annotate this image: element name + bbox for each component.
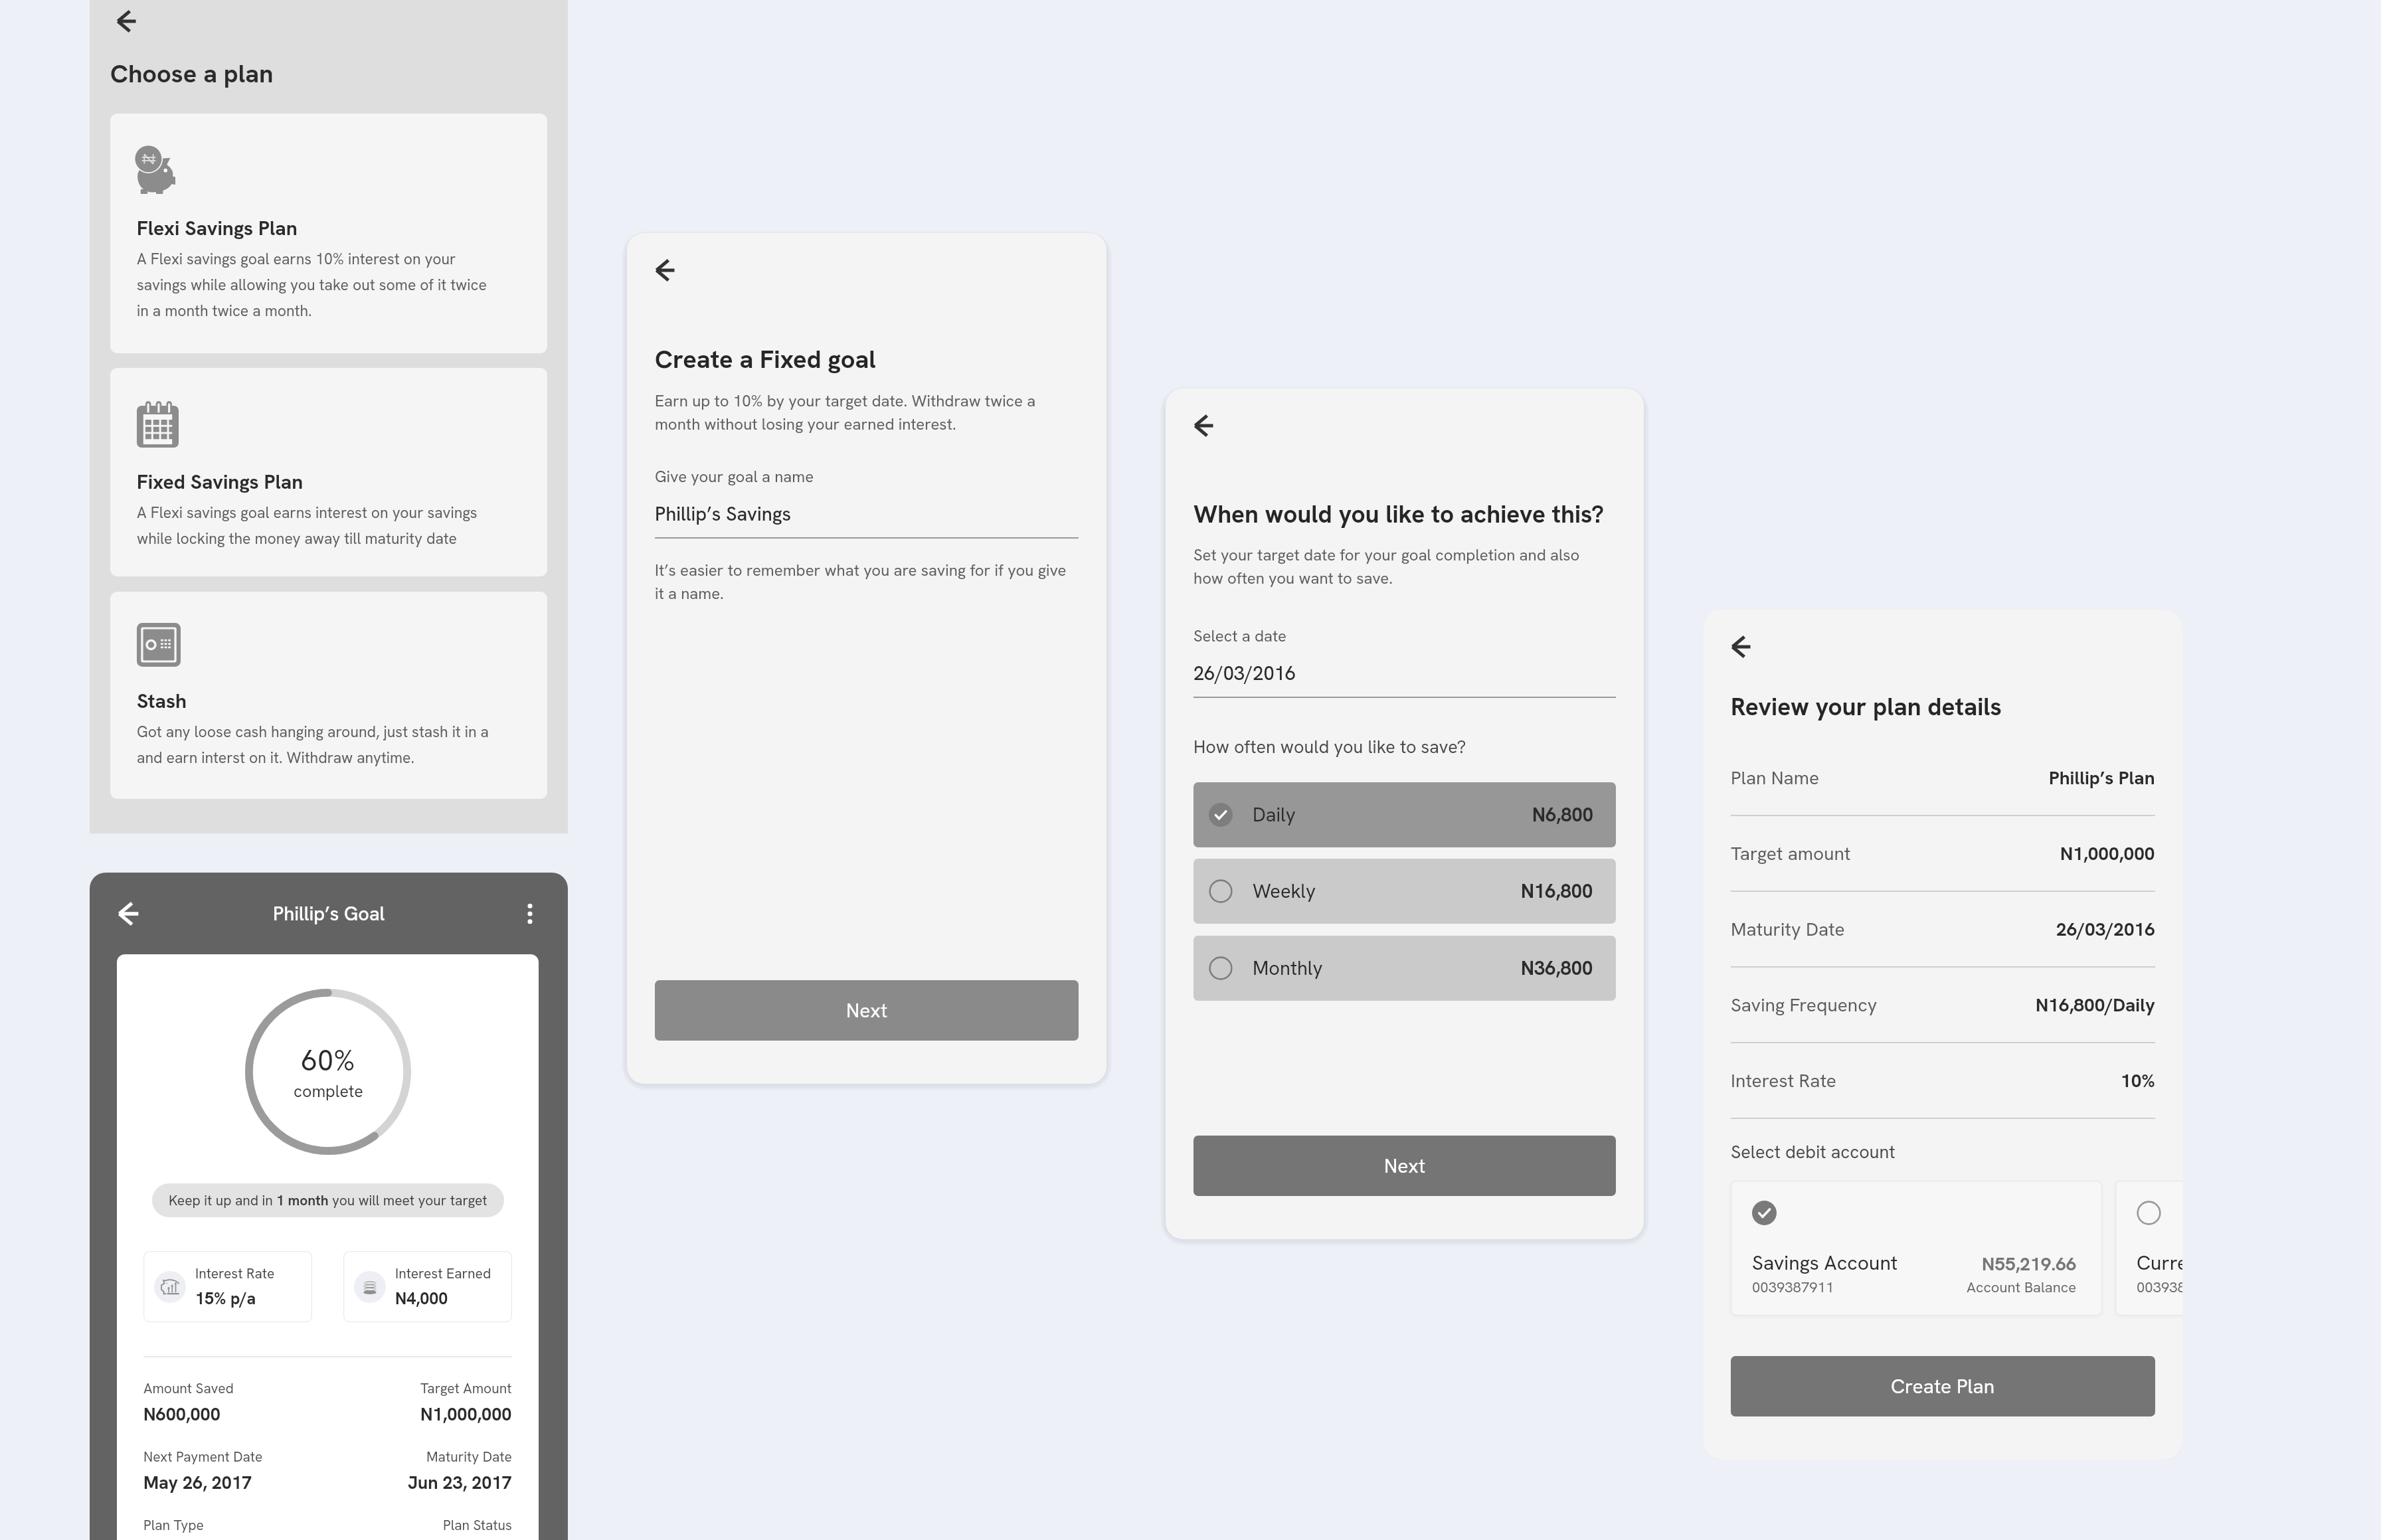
button[interactable]: Navigate back — [116, 11, 137, 32]
staticText: Amount Saved — [143, 1379, 234, 1397]
button[interactable]: Monthly — [1193, 936, 1616, 1001]
staticText: When would you like to achieve this? — [1193, 498, 1605, 530]
staticText: N16,800 — [1521, 879, 1593, 904]
button[interactable]: Flexi Savings Plan — [110, 114, 547, 353]
staticText: Phillip’s Savings — [655, 501, 792, 527]
staticText: N36,800 — [1521, 956, 1593, 981]
staticText: Earn up to 10% by your target date. With… — [655, 390, 1053, 434]
button[interactable]: Fixed Savings Plan — [110, 368, 547, 576]
staticText: Next — [1384, 1153, 1426, 1179]
staticText: Maturity Date — [426, 1448, 512, 1466]
staticText: Create Plan — [1891, 1373, 1995, 1399]
button[interactable]: More options — [516, 900, 544, 928]
button[interactable]: Savings Account — [1731, 1181, 2102, 1316]
staticText: 10% — [2121, 1069, 2155, 1092]
staticText: How often would you like to save? — [1193, 735, 1466, 758]
staticText: A Flexi savings goal earns interest on y… — [137, 503, 499, 549]
button[interactable]: Next — [655, 980, 1079, 1041]
button[interactable]: Navigate back — [655, 260, 676, 281]
staticText: Plan Type — [143, 1516, 204, 1534]
staticText: Savings Account — [1752, 1250, 1905, 1276]
staticText: N55,219.66 — [1982, 1252, 2077, 1276]
staticText: Account Balance — [1967, 1278, 2077, 1297]
button[interactable]: Create Plan — [1731, 1356, 2155, 1416]
staticText: Plan Status — [443, 1516, 512, 1534]
staticText: Phillip’s Goal — [273, 901, 385, 926]
staticText: 60% — [302, 1042, 355, 1079]
staticText: Saving Frequency — [1731, 993, 1878, 1017]
staticText: Flexi Savings Plan — [137, 215, 298, 241]
staticText: N1,000,000 — [420, 1403, 512, 1426]
staticText: Interest Rate — [195, 1264, 275, 1282]
staticText: Next Payment Date — [143, 1448, 263, 1466]
staticText: Target Amount — [420, 1379, 512, 1397]
staticText: N16,800/Daily — [2036, 993, 2155, 1017]
staticText: It’s easier to remember what you are sav… — [655, 560, 1079, 604]
staticText: Choose a plan — [110, 57, 274, 90]
staticText: Weekly — [1253, 879, 1316, 904]
button[interactable]: Navigate back — [1193, 415, 1215, 436]
staticText: May 26, 2017 — [143, 1471, 252, 1494]
staticText: N600,000 — [143, 1403, 220, 1426]
staticText: A Flexi savings goal earns 10% interest … — [137, 249, 499, 321]
staticText: N4,000 — [395, 1288, 448, 1310]
staticText: 0039387911 — [2137, 1278, 2182, 1297]
staticText: N6,800 — [1532, 802, 1593, 827]
staticText: Plan Name — [1731, 766, 1820, 790]
staticText: Maturity Date — [1731, 917, 1845, 941]
staticText: Target amount — [1731, 841, 1851, 865]
staticText: Set your target date for your goal compl… — [1193, 545, 1595, 588]
staticText: Review your plan details — [1731, 691, 2002, 723]
staticText: Fixed Savings Plan — [137, 469, 304, 495]
staticText: complete — [294, 1080, 363, 1102]
staticText: Got any loose cash hanging around, just … — [137, 722, 499, 768]
staticText: Select a date — [1193, 626, 1287, 646]
button[interactable]: Current Account — [2115, 1181, 2182, 1316]
staticText: N1,000,000 — [2060, 841, 2155, 865]
button[interactable]: Interest Earned — [343, 1251, 512, 1322]
button[interactable]: Next — [1193, 1136, 1616, 1196]
staticText: Give your goal a name — [655, 466, 814, 487]
button[interactable]: Stash — [110, 592, 547, 799]
staticText: Keep it up and in 1 month you will meet … — [169, 1191, 487, 1209]
staticText: Interest Rate — [1731, 1069, 1836, 1092]
staticText: Daily — [1253, 802, 1296, 827]
staticText: Next — [846, 997, 888, 1023]
staticText: Phillip’s Plan — [2049, 766, 2155, 790]
button[interactable]: Navigate back — [1731, 636, 1752, 657]
staticText: 26/03/2016 — [2056, 917, 2155, 941]
staticText: Jun 23, 2017 — [408, 1471, 512, 1494]
staticText: 0039387911 — [1752, 1278, 1834, 1297]
staticText: Select debit account — [1731, 1140, 1896, 1163]
staticText: Monthly — [1253, 956, 1323, 981]
staticText: 26/03/2016 — [1193, 661, 1296, 686]
staticText: Interest Earned — [395, 1264, 491, 1282]
staticText: Current Account — [2137, 1250, 2182, 1276]
button[interactable]: Weekly — [1193, 859, 1616, 924]
staticText: Create a Fixed goal — [655, 343, 876, 376]
button[interactable]: Interest Rate — [143, 1251, 312, 1322]
button[interactable]: Daily — [1193, 782, 1616, 847]
button[interactable]: Navigate back — [118, 902, 140, 925]
staticText: Stash — [137, 688, 187, 714]
staticText: 15% p/a — [195, 1288, 256, 1310]
